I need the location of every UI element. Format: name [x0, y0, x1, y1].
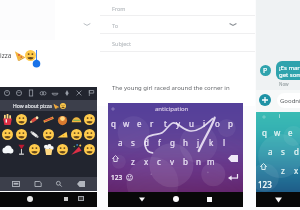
button[interactable]: Emoji 20	[1, 143, 14, 156]
button[interactable]: f	[153, 135, 165, 149]
button[interactable]: Backspace	[225, 152, 241, 164]
button[interactable]: Category 6	[73, 87, 84, 99]
button[interactable]: g	[166, 135, 178, 149]
button[interactable]: Emoji 25	[70, 143, 83, 156]
button[interactable]: Contact avatar	[260, 65, 271, 76]
button[interactable]: Emoji 03	[42, 113, 55, 126]
button[interactable]: Category 0	[1, 87, 12, 99]
button[interactable]: o	[211, 116, 223, 130]
staticText: l	[223, 137, 226, 148]
button[interactable]: Category 4	[49, 87, 60, 99]
button[interactable]: s	[127, 135, 139, 149]
button[interactable]: Enter	[225, 172, 241, 183]
button[interactable]: Category 1	[13, 87, 24, 99]
button[interactable]: Emoji 14	[56, 128, 69, 141]
button[interactable]: p	[224, 116, 236, 130]
button[interactable]: s	[277, 144, 289, 158]
button[interactable]: z	[127, 154, 139, 168]
button[interactable]: k	[205, 135, 217, 149]
button[interactable]: Emoji 00	[1, 113, 14, 126]
button[interactable]: d	[290, 144, 300, 158]
button[interactable]: ¡Es mara	[276, 61, 300, 80]
button[interactable]: anticipation	[155, 105, 189, 113]
button[interactable]: Emoji 10	[1, 128, 14, 141]
button[interactable]: GIF	[31, 177, 45, 191]
button[interactable]: Category 5	[61, 87, 72, 99]
button[interactable]: x	[290, 163, 300, 177]
staticText: s	[131, 137, 135, 148]
staticText: get som	[279, 71, 300, 79]
button[interactable]: Shift	[256, 160, 270, 172]
button[interactable]: a	[264, 144, 276, 158]
button[interactable]: j	[192, 135, 204, 149]
button[interactable]: b	[179, 154, 191, 168]
button[interactable]: Emoji 26	[83, 143, 96, 156]
staticText: izza	[0, 51, 12, 60]
button[interactable]: Category 2	[25, 87, 36, 99]
button[interactable]: Emoji 05	[70, 113, 83, 126]
button[interactable]: 123	[256, 178, 274, 190]
button[interactable]: z	[277, 163, 289, 177]
button[interactable]: y	[172, 116, 184, 130]
button[interactable]: Emoji 23	[42, 143, 55, 156]
staticText: i	[203, 118, 206, 129]
button[interactable]: Category 7	[85, 87, 96, 99]
button[interactable]: v	[166, 154, 178, 168]
staticText: Goodnig	[280, 97, 300, 105]
staticText: ¡Es mara	[279, 64, 300, 72]
button[interactable]: w	[271, 125, 283, 139]
button[interactable]: a	[114, 135, 126, 149]
button[interactable]: m	[205, 154, 217, 168]
button[interactable]: Backspace	[74, 177, 88, 191]
button[interactable]: x	[140, 154, 152, 168]
button[interactable]: t	[159, 116, 171, 130]
button[interactable]: n	[192, 154, 204, 168]
button[interactable]: Emoji 12	[28, 128, 41, 141]
staticText: d	[144, 137, 149, 148]
staticText: From	[112, 5, 126, 12]
button[interactable]: Emoji 16	[83, 128, 96, 141]
button[interactable]: Emoji 02	[28, 113, 41, 126]
button[interactable]: Search	[52, 177, 66, 191]
button[interactable]: w	[120, 116, 132, 130]
staticText: d	[294, 146, 299, 157]
staticText: q	[262, 127, 267, 138]
button[interactable]: e	[284, 125, 296, 139]
button[interactable]: Emoji	[124, 172, 134, 182]
button[interactable]: Expand account	[81, 18, 93, 30]
button[interactable]: Sticker	[9, 177, 23, 191]
button[interactable]: Emoji 06	[83, 113, 96, 126]
button[interactable]: Emoji 24	[56, 143, 69, 156]
button[interactable]: Shift	[108, 152, 122, 164]
staticText: k	[209, 137, 214, 148]
button[interactable]: Expand recipients	[227, 18, 239, 30]
button[interactable]: 123	[109, 171, 124, 183]
button[interactable]: How about pizza	[0, 100, 97, 111]
staticText: Subject	[112, 40, 131, 47]
button[interactable]: Add attachment	[259, 94, 271, 106]
button[interactable]: Emoji 04	[56, 113, 69, 126]
button[interactable]: h	[179, 135, 191, 149]
button[interactable]: c	[153, 154, 165, 168]
button[interactable]: Category 3	[37, 87, 48, 99]
button[interactable]: Emoji 11	[15, 128, 28, 141]
staticText: e	[288, 127, 293, 138]
button[interactable]: q	[258, 125, 270, 139]
button[interactable]: Emoji 01	[15, 113, 28, 126]
button[interactable]: Emoji 13	[42, 128, 55, 141]
button[interactable]: Goodnig	[277, 93, 300, 108]
button[interactable]: u	[185, 116, 197, 130]
button[interactable]: Emoji 21	[15, 143, 28, 156]
staticText: j	[197, 137, 200, 148]
button[interactable]: e	[133, 116, 145, 130]
button[interactable]: Emoji 15	[70, 128, 83, 141]
button[interactable]: d	[140, 135, 152, 149]
staticText: a	[268, 146, 273, 157]
staticText: c	[157, 156, 161, 167]
button[interactable]: q	[107, 116, 119, 130]
button[interactable]: Emoji 22	[28, 143, 41, 156]
button[interactable]: l	[218, 135, 230, 149]
button[interactable]: r	[146, 116, 158, 130]
staticText: f	[158, 137, 161, 148]
button[interactable]: i	[198, 116, 210, 130]
